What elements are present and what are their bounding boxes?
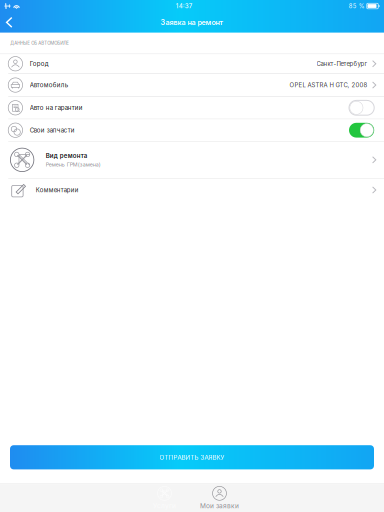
staticText: Город: [30, 60, 49, 67]
button[interactable]: Автомобиль: [0, 74, 384, 96]
staticText: ДАННЫЕ ОБ АВТОМОБИЛЕ: [10, 40, 69, 46]
staticText: Автомобиль: [30, 81, 68, 89]
staticText: Заявка на ремонт: [160, 18, 223, 27]
staticText: Комментарии: [36, 186, 79, 194]
staticText: Санкт-Петербург: [317, 60, 368, 67]
staticText: 85 %: [349, 2, 365, 10]
staticText: Ремень ГРМ(замена): [46, 161, 101, 168]
staticText: Вид ремонта: [46, 152, 88, 159]
button[interactable]: Мои заявки: [192, 485, 247, 511]
button[interactable]: Город: [0, 54, 384, 73]
button[interactable]: ОТПРАВИТЬ ЗАЯВКУ: [10, 445, 374, 469]
button[interactable]: Back: [1, 14, 17, 30]
staticText: ОТПРАВИТЬ ЗАЯВКУ: [159, 453, 224, 461]
staticText: Авто на гарантии: [30, 104, 83, 111]
button[interactable]: Свои запчасти: [0, 119, 384, 141]
button[interactable]: Комментарии: [0, 179, 384, 201]
staticText: OPEL ASTRA H GTC, 2008: [290, 81, 368, 89]
button[interactable]: Авто на гарантии: [0, 97, 384, 119]
staticText: Свои запчасти: [30, 126, 75, 134]
staticText: Мои заявки: [200, 502, 239, 510]
staticText: 14:37: [176, 2, 193, 10]
button[interactable]: Вид ремонта: [0, 142, 384, 178]
